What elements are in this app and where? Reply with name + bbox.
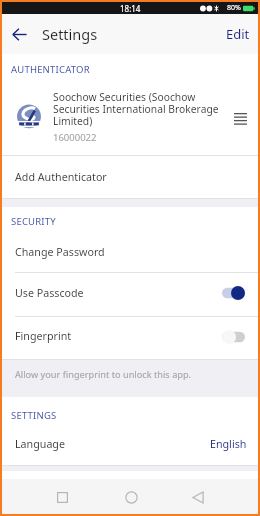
button[interactable]: Fingerprint	[2, 317, 258, 359]
staticText: Fingerprint	[15, 329, 72, 344]
button[interactable]: Soochow Securities (Soochow Securities I…	[2, 84, 258, 155]
staticText: Edit	[226, 25, 250, 43]
staticText: Add Authenticator	[15, 170, 107, 185]
staticText: Settings	[42, 24, 98, 44]
staticText: Change Password	[15, 245, 105, 260]
button[interactable]: Recents	[45, 480, 79, 514]
button[interactable]: Edit	[220, 19, 252, 49]
staticText: Soochow Securities (Soochow Securities I…	[53, 90, 225, 128]
button[interactable]: Use Passcode	[2, 273, 258, 316]
staticText: English	[210, 437, 247, 452]
staticText: AUTHENTICATOR	[11, 63, 90, 76]
button[interactable]: Language	[2, 423, 258, 465]
button[interactable]: Back	[6, 21, 32, 47]
staticText: 16000022	[53, 131, 97, 144]
button[interactable]: Back	[181, 480, 215, 514]
button[interactable]: Add Authenticator	[2, 156, 258, 198]
staticText: Allow your fingerprint to unlock this ap…	[15, 368, 192, 381]
button[interactable]: Home	[114, 480, 148, 514]
button[interactable]: Change Password	[2, 232, 258, 272]
staticText: Language	[15, 437, 65, 452]
staticText: SECURITY	[11, 215, 56, 228]
staticText: 18:14	[120, 3, 141, 14]
staticText: SETTINGS	[11, 409, 57, 422]
button[interactable]: Reorder	[231, 109, 249, 127]
staticText: 80%	[227, 3, 241, 13]
staticText: Use Passcode	[15, 286, 84, 301]
